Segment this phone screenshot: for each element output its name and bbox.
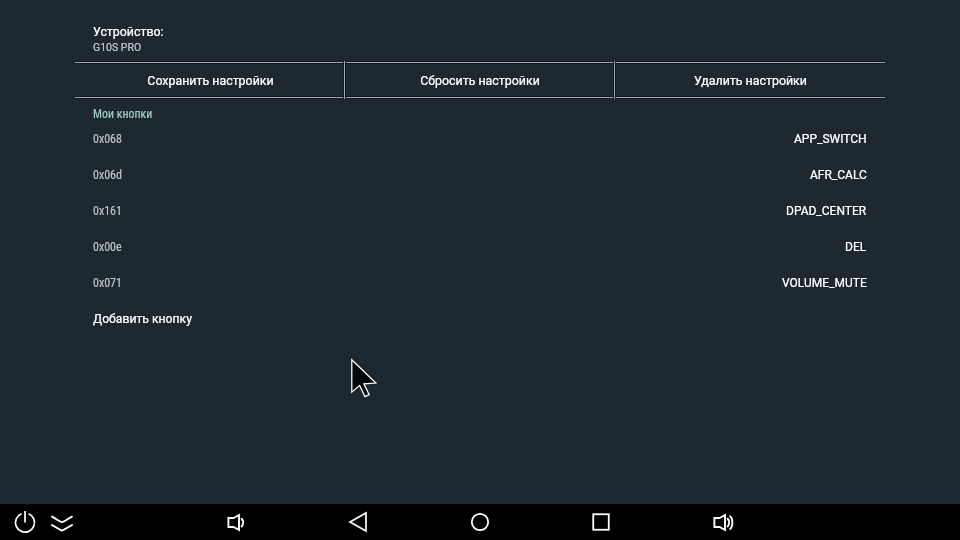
- staticText: G10S PRO: [93, 41, 142, 53]
- button[interactable]: Удалить настройки: [615, 61, 885, 99]
- staticText: Мои кнопки: [93, 107, 153, 121]
- staticText: DPAD_CENTER: [786, 204, 867, 218]
- staticText: APP_SWITCH: [794, 132, 867, 146]
- button[interactable]: Back: [344, 508, 372, 536]
- button[interactable]: Сохранить настройки: [75, 61, 345, 99]
- button[interactable]: Home: [466, 508, 494, 536]
- button[interactable]: Volume down: [222, 508, 250, 536]
- staticText: 0x068: [93, 132, 122, 146]
- button[interactable]: Power: [11, 508, 39, 536]
- staticText: VOLUME_MUTE: [782, 276, 867, 290]
- staticText: 0x06d: [93, 168, 122, 182]
- button[interactable]: Сбросить настройки: [345, 61, 615, 99]
- button[interactable]: Hide keyboard: [48, 508, 76, 536]
- staticText: Сохранить настройки: [147, 73, 274, 88]
- staticText: DEL: [845, 240, 867, 254]
- staticText: Устройство:: [93, 24, 164, 39]
- button[interactable]: 0x068: [75, 121, 885, 157]
- staticText: Удалить настройки: [694, 73, 807, 88]
- button[interactable]: 0x071: [75, 265, 885, 301]
- button[interactable]: Добавить кнопку: [75, 301, 885, 337]
- staticText: 0x071: [93, 276, 122, 290]
- button[interactable]: 0x00e: [75, 229, 885, 265]
- button[interactable]: 0x161: [75, 193, 885, 229]
- staticText: Сбросить настройки: [420, 73, 540, 88]
- button[interactable]: Recent apps: [587, 508, 615, 536]
- button[interactable]: 0x06d: [75, 157, 885, 193]
- staticText: 0x161: [93, 204, 122, 218]
- staticText: Добавить кнопку: [93, 312, 192, 326]
- button[interactable]: Volume up: [708, 508, 736, 536]
- staticText: AFR_CALC: [810, 168, 867, 182]
- staticText: 0x00e: [93, 240, 122, 254]
